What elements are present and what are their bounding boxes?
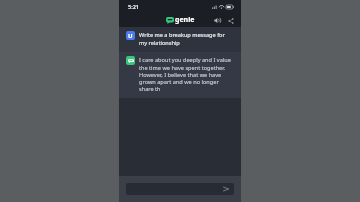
button[interactable]: U <box>119 27 241 52</box>
button[interactable]: I care about you deeply and I value the … <box>119 52 241 98</box>
button[interactable]: Share <box>226 16 235 25</box>
staticText: I care about you deeply and I value the … <box>139 56 233 93</box>
staticText: Write me a breakup message for my relati… <box>139 31 233 47</box>
staticText: 5:21 <box>128 3 139 10</box>
button[interactable]: Send <box>222 185 230 193</box>
staticText: U <box>128 32 133 40</box>
staticText: genie <box>175 15 195 25</box>
button[interactable]: Send <box>126 183 234 195</box>
button[interactable]: Sound on <box>213 16 222 25</box>
